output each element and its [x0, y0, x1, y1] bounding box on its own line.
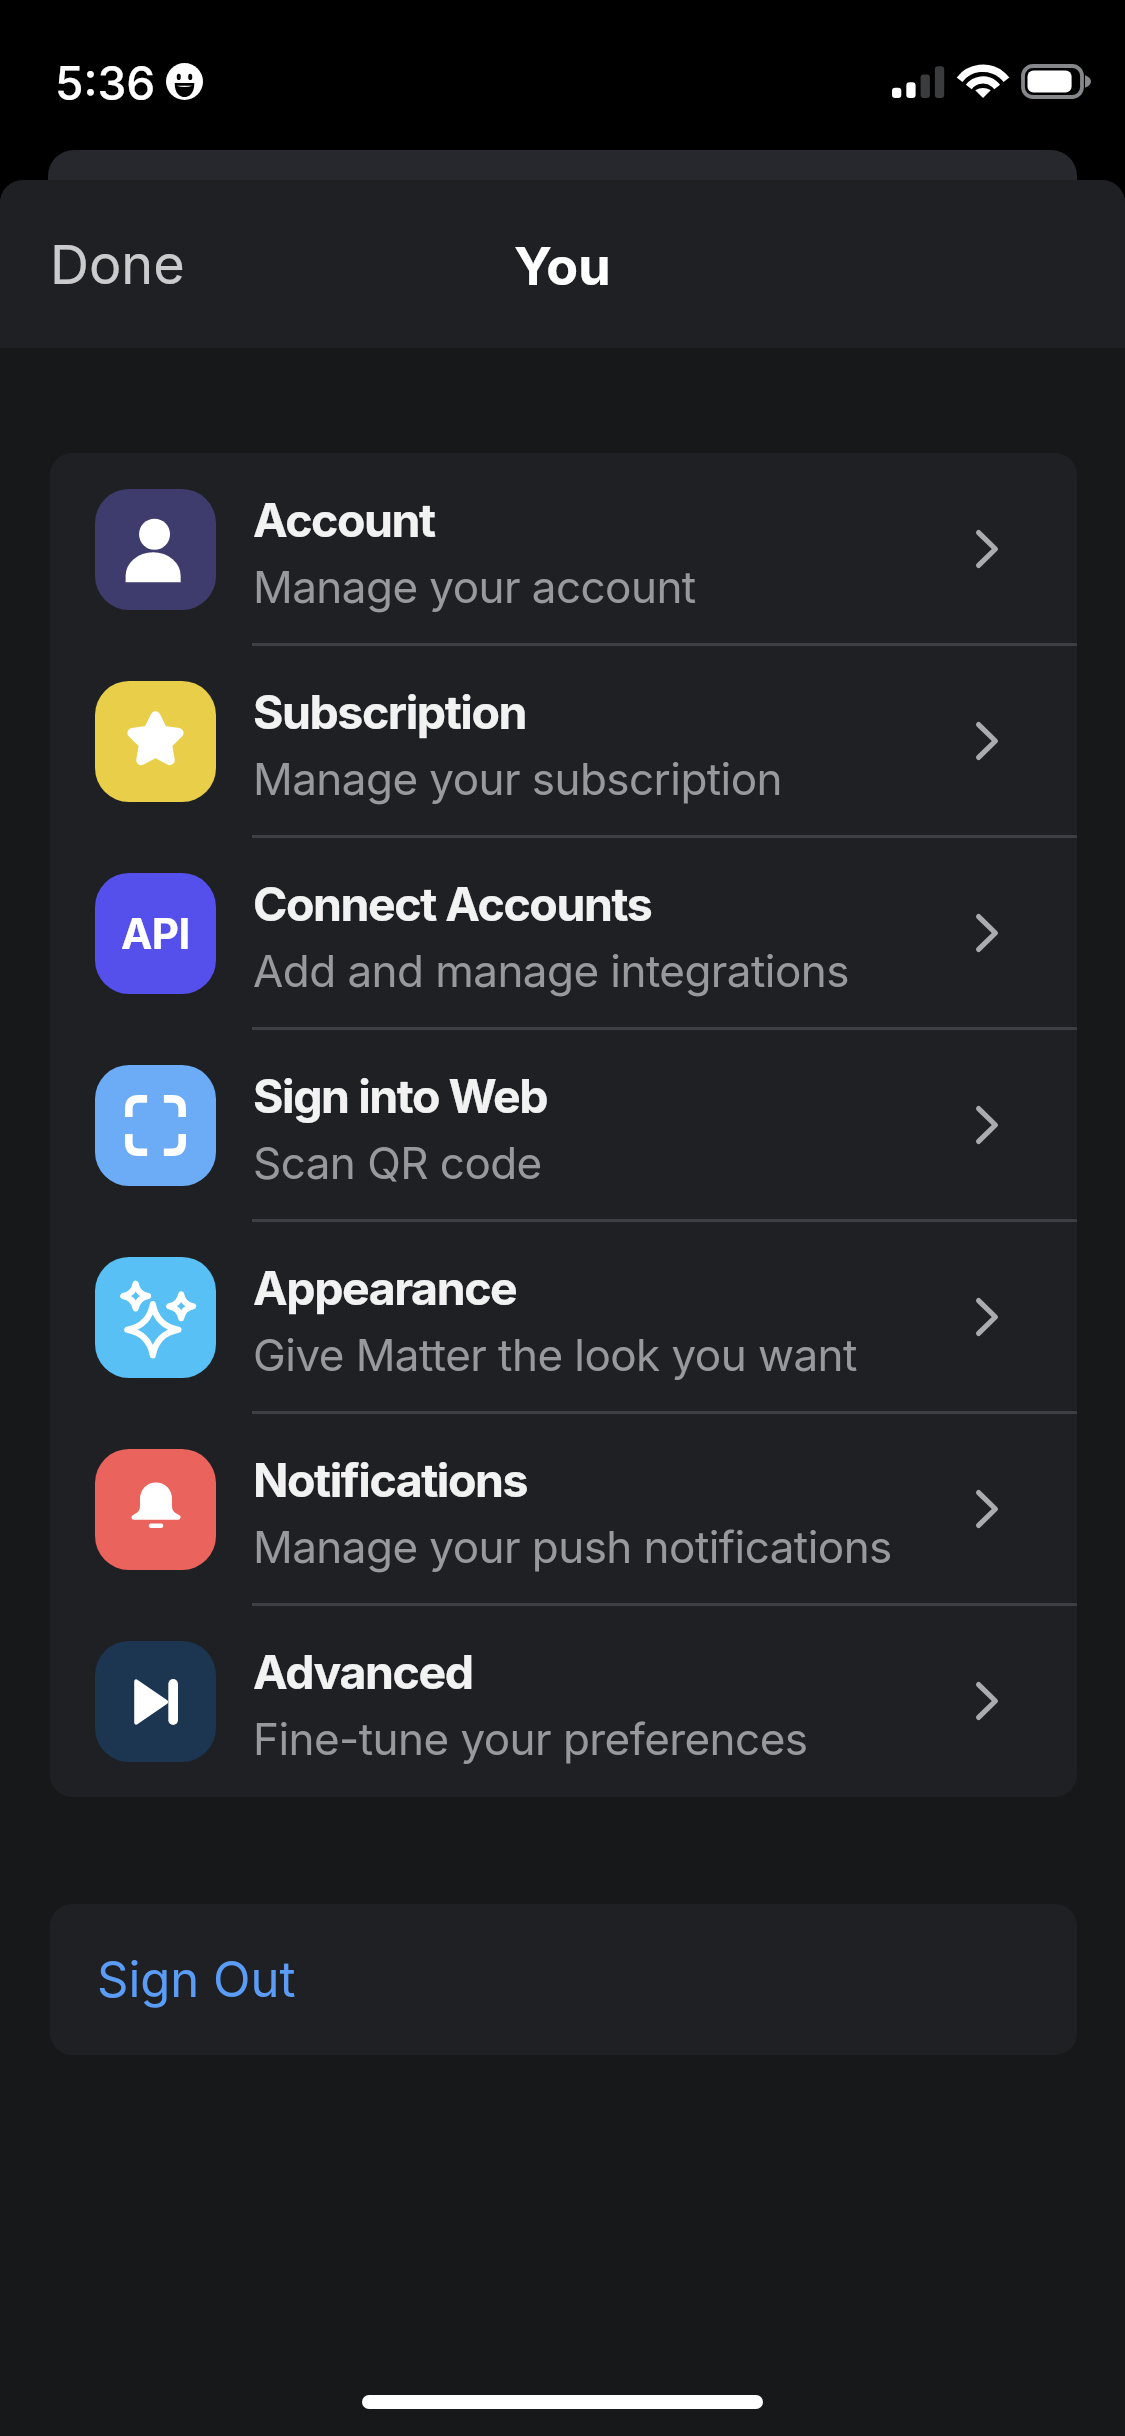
button[interactable]: Subscription [50, 645, 1077, 837]
button[interactable]: Done [0, 212, 235, 317]
staticText: Manage your account [253, 560, 696, 613]
staticText: Subscription [253, 684, 526, 740]
staticText: API [121, 908, 190, 959]
staticText: Notifications [253, 1452, 528, 1508]
staticText: Fine-tune your preferences [253, 1712, 808, 1765]
button[interactable]: Appearance [50, 1221, 1077, 1413]
button[interactable]: Notifications [50, 1413, 1077, 1605]
staticText: Give Matter the look you want [253, 1328, 857, 1381]
staticText: Done [50, 232, 185, 297]
staticText: Add and manage integrations [253, 944, 849, 997]
staticText: Connect Accounts [253, 876, 652, 932]
staticText: Sign Out [97, 1950, 296, 2009]
button[interactable]: API [50, 837, 1077, 1029]
staticText: Scan QR code [253, 1136, 542, 1189]
button[interactable]: Sign Out [50, 1904, 1077, 2055]
staticText: Manage your subscription [253, 752, 783, 805]
staticText: 5:36 [55, 55, 156, 111]
staticText: Manage your push notifications [253, 1520, 892, 1573]
staticText: Account [253, 492, 435, 548]
staticText: Sign into Web [253, 1068, 548, 1124]
staticText: Appearance [253, 1260, 517, 1316]
staticText: You [514, 235, 611, 298]
button[interactable]: Sign into Web [50, 1029, 1077, 1221]
staticText: Advanced [253, 1644, 473, 1700]
button[interactable]: Advanced [50, 1605, 1077, 1797]
button[interactable]: Account [50, 453, 1077, 645]
